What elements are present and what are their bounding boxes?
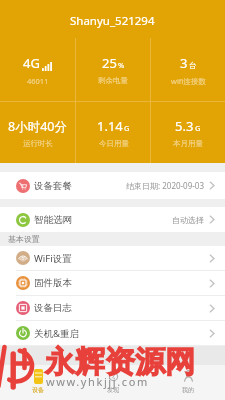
staticText: 5.3 <box>175 117 194 135</box>
button[interactable]: 我的 <box>150 346 225 400</box>
staticText: 智能选网 <box>34 214 72 226</box>
button[interactable]: 设备套餐 <box>0 172 225 199</box>
staticText: Shanyu_521294 <box>70 13 155 29</box>
staticText: 25 <box>102 54 117 72</box>
staticText: 本月用量 <box>173 139 203 148</box>
staticText: 8小时40分 <box>8 118 67 135</box>
staticText: 设备套餐 <box>34 180 72 192</box>
staticText: 固件版本 <box>34 277 72 289</box>
button[interactable]: 固件版本 <box>0 271 225 295</box>
staticText: G <box>195 123 201 133</box>
staticText: 4G <box>23 54 40 72</box>
staticText: WiFi设置 <box>34 252 72 265</box>
button[interactable]: WiFi设置 <box>0 246 225 270</box>
staticText: 发现 <box>107 386 119 394</box>
staticText: 设备日志 <box>34 302 72 314</box>
staticText: 今日用量 <box>99 139 129 148</box>
staticText: % <box>118 60 125 70</box>
staticText: 设备 <box>32 386 44 394</box>
staticText: 自动选择 <box>172 215 204 225</box>
staticText: 3 <box>180 54 188 72</box>
button[interactable]: 设备日志 <box>0 296 225 320</box>
staticText: www.yhkjjj.com <box>46 374 149 389</box>
staticText: 46011 <box>27 76 49 86</box>
staticText: 运行时长 <box>23 139 53 148</box>
staticText: 关机&重启 <box>34 327 79 340</box>
button[interactable]: 发现 <box>75 346 150 400</box>
staticText: wifi连接数 <box>171 76 206 86</box>
staticText: 基本设置 <box>8 234 40 244</box>
staticText: 台 <box>189 61 197 70</box>
staticText: 结束日期: 2020-09-03 <box>126 180 204 191</box>
staticText: 永辉资源网 <box>45 343 195 381</box>
staticText: 剩余电量 <box>98 76 128 85</box>
button[interactable]: 关机&重启 <box>0 321 225 345</box>
button[interactable]: 智能选网 <box>0 207 225 232</box>
staticText: 我的 <box>182 386 194 394</box>
staticText: G <box>124 123 130 133</box>
staticText: 1.14 <box>97 117 123 135</box>
button[interactable]: 设备 <box>0 346 75 400</box>
